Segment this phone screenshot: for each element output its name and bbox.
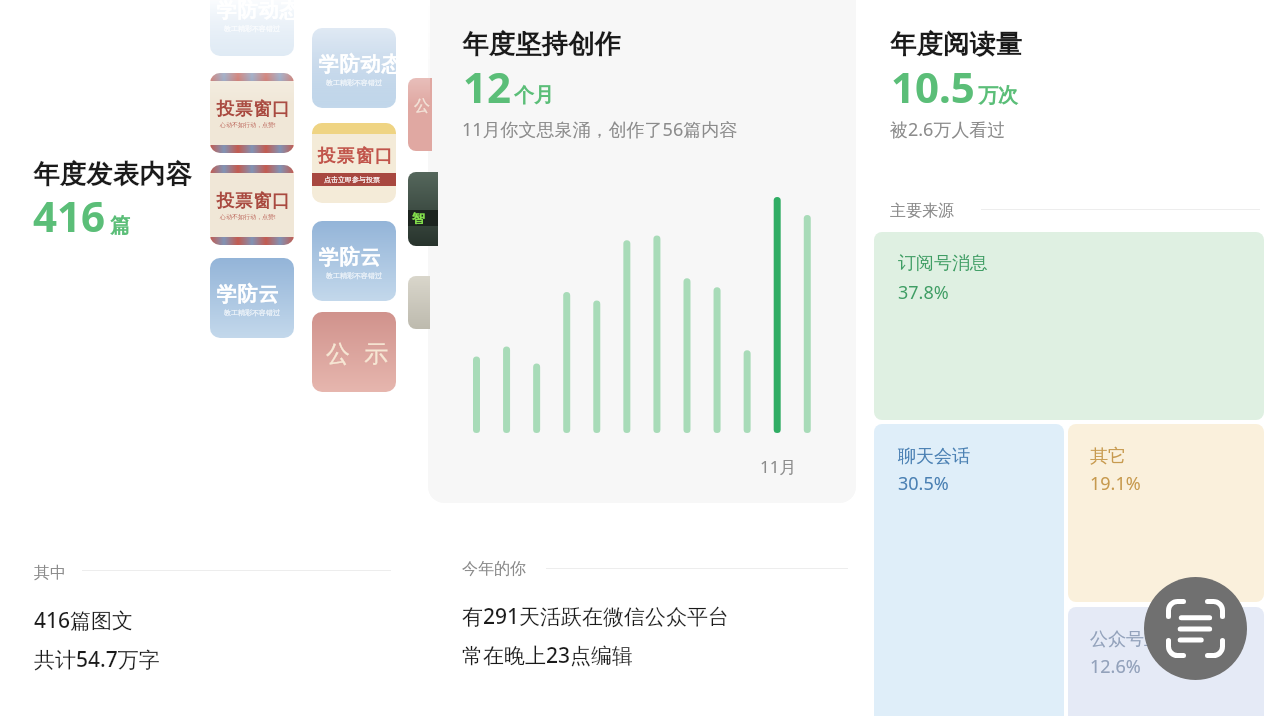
staticText: 12.6%	[1090, 654, 1141, 679]
button[interactable]: 聊天会话	[874, 424, 1064, 716]
staticText: 共计54.7万字	[34, 645, 160, 674]
staticText: 37.8%	[898, 280, 949, 305]
staticText: 心动不如行动，点赞!	[220, 213, 276, 221]
staticText: 有291天活跃在微信公众平台	[462, 602, 730, 631]
staticText: 教工精彩不容错过	[224, 24, 280, 33]
staticText: 学防云	[216, 282, 279, 307]
staticText: 被2.6万人看过	[890, 117, 1006, 142]
staticText: 今年的你	[462, 559, 526, 579]
staticText: 订阅号消息	[898, 252, 988, 275]
staticText: 学防动态	[216, 0, 294, 23]
staticText: 教工精彩不容错过	[326, 271, 382, 280]
staticText: 11月你文思泉涌，创作了56篇内容	[462, 117, 738, 142]
staticText: 个月	[514, 83, 554, 108]
staticText: 11月	[760, 455, 797, 478]
staticText: 公	[414, 96, 430, 116]
staticText: 年度坚持创作	[462, 28, 621, 61]
staticText: 其中	[34, 563, 66, 583]
staticText: 公众号主页	[1090, 628, 1180, 651]
staticText: 教工精彩不容错过	[224, 308, 280, 317]
staticText: 教工精彩不容错过	[326, 78, 382, 87]
staticText: 投票窗口	[216, 190, 290, 213]
button[interactable]: 订阅号消息	[874, 232, 1264, 420]
button[interactable]	[1144, 577, 1247, 680]
staticText: 19.1%	[1090, 471, 1141, 496]
staticText: 30.5%	[898, 471, 949, 496]
staticText: 智	[412, 210, 425, 226]
staticText: 篇	[110, 213, 130, 238]
staticText: 416	[33, 187, 106, 244]
staticText: 公 示	[326, 336, 393, 369]
staticText: 学防云	[318, 245, 381, 270]
staticText: 12	[463, 58, 512, 115]
staticText: 常在晚上23点编辑	[462, 641, 634, 670]
staticText: 其它	[1090, 445, 1126, 468]
staticText: 投票窗口	[216, 98, 290, 121]
button[interactable]: 其它	[1068, 424, 1264, 602]
staticText: 心动不如行动，点赞!	[220, 121, 276, 129]
staticText: 学防动态	[318, 52, 396, 77]
staticText: 聊天会话	[898, 445, 970, 468]
staticText: 年度发表内容	[33, 158, 192, 191]
staticText: 投票窗口	[317, 145, 393, 168]
staticText: 年度阅读量	[890, 28, 1023, 61]
staticText: 点击立即参与投票	[324, 175, 380, 184]
staticText: 主要来源	[890, 201, 954, 221]
button[interactable]: 公众号主页	[1068, 607, 1264, 716]
staticText: 万次	[978, 83, 1018, 108]
staticText: 416篇图文	[34, 606, 134, 635]
staticText: 10.5	[891, 58, 975, 115]
